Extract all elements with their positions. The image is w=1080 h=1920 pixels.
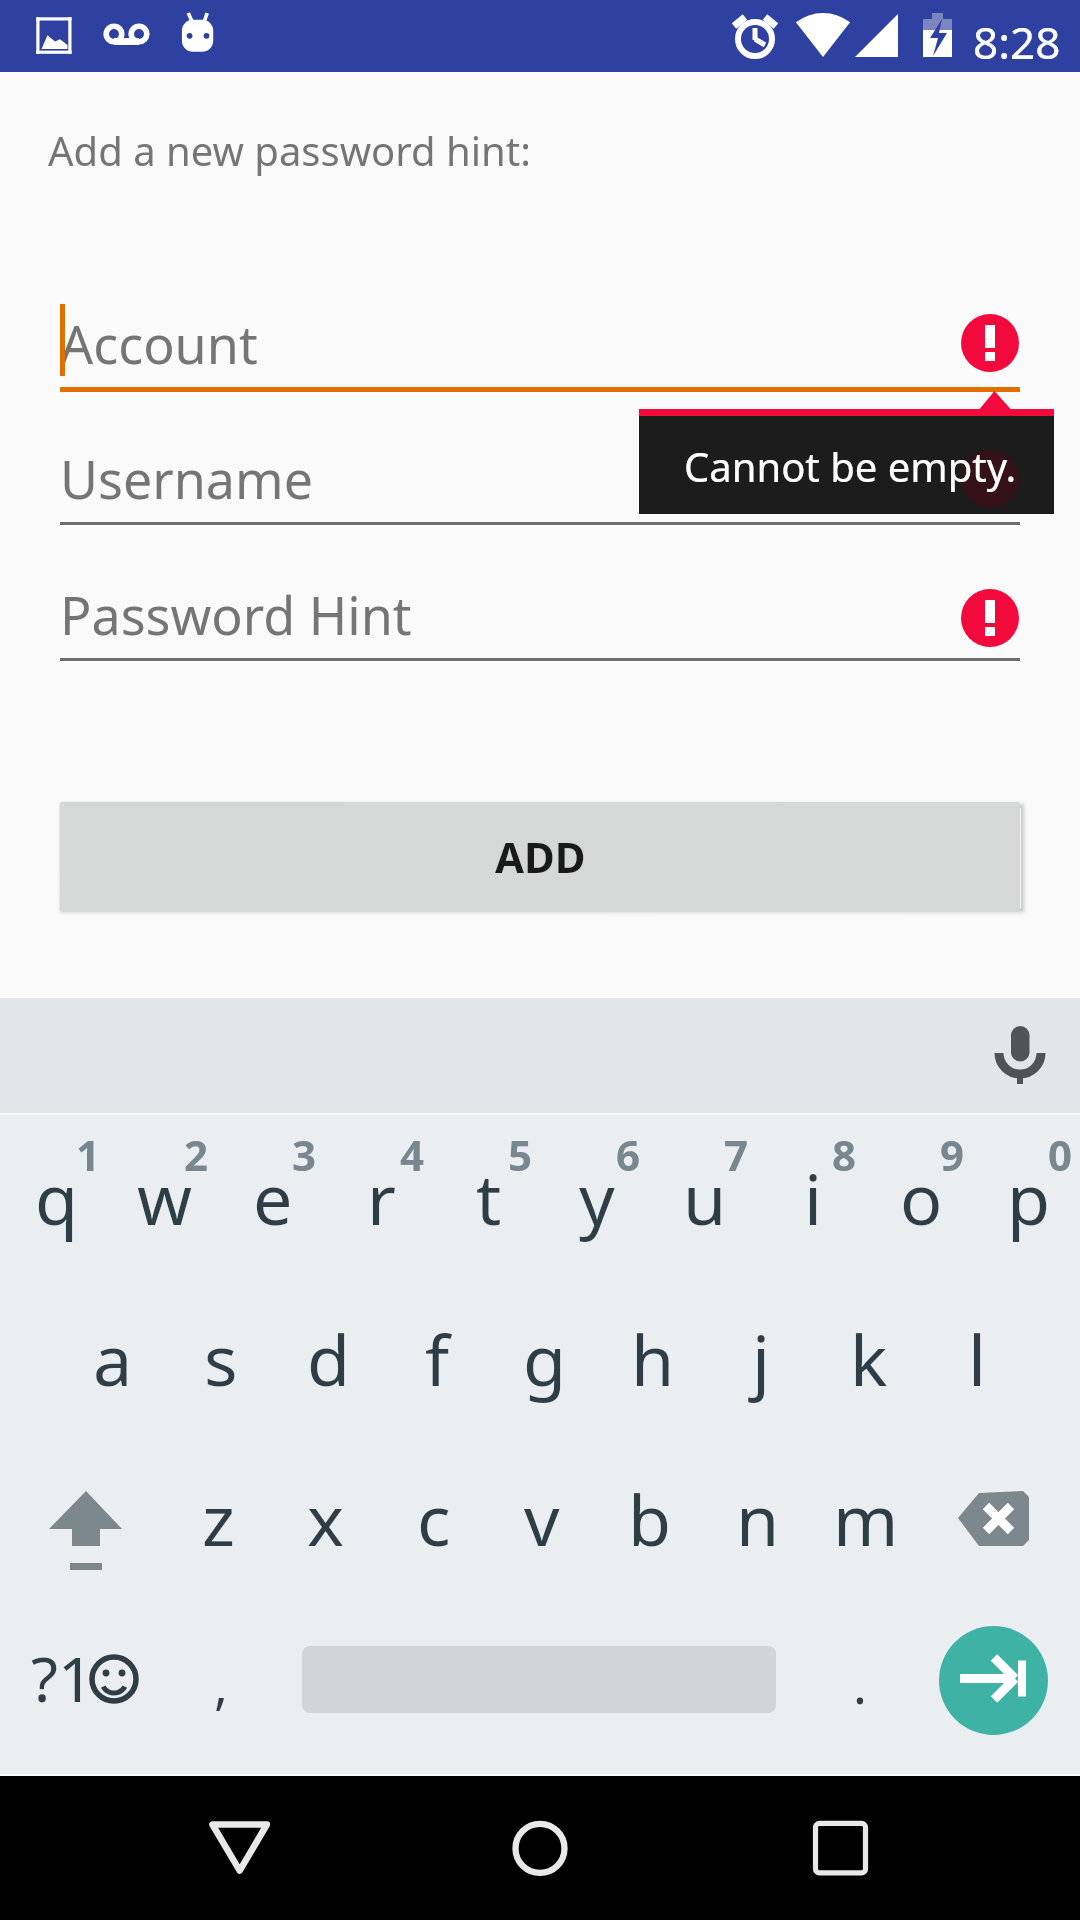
button[interactable]: 3	[216, 1115, 324, 1275]
button[interactable]: f	[383, 1275, 491, 1435]
staticText: .	[853, 1648, 867, 1719]
button[interactable]: Recents	[795, 1806, 885, 1896]
button[interactable]: Username	[60, 435, 1020, 525]
button[interactable]: b	[596, 1435, 704, 1595]
staticText: x	[307, 1471, 345, 1566]
button[interactable]: Error	[961, 589, 1019, 647]
staticText: 6	[616, 1126, 641, 1183]
staticText: b	[628, 1471, 672, 1566]
staticText: a	[93, 1311, 133, 1406]
staticText: w	[137, 1150, 193, 1245]
staticText: Account	[60, 308, 258, 379]
button[interactable]: ADD	[60, 802, 1020, 911]
button[interactable]: Shift	[0, 1435, 162, 1595]
button[interactable]: Cannot be empty.	[639, 409, 1054, 514]
staticText: 1	[76, 1126, 101, 1183]
staticText: g	[523, 1311, 567, 1406]
button[interactable]: Symbols and emoji	[0, 1595, 180, 1755]
button[interactable]: d	[275, 1275, 383, 1435]
staticText: i	[804, 1150, 823, 1245]
staticText: 0	[1048, 1126, 1073, 1183]
button[interactable]: Account	[60, 300, 1020, 392]
staticText: c	[417, 1471, 451, 1566]
staticText: v	[524, 1471, 560, 1566]
staticText: 5	[508, 1126, 533, 1183]
button[interactable]: 0	[972, 1115, 1080, 1275]
staticText: Password Hint	[60, 579, 412, 650]
staticText: t	[476, 1150, 502, 1245]
staticText: z	[202, 1471, 235, 1566]
button[interactable]: 2	[108, 1115, 216, 1275]
staticText: u	[683, 1150, 727, 1245]
staticText: m	[833, 1471, 899, 1566]
button[interactable]: k	[815, 1275, 923, 1435]
staticText: ADD	[495, 828, 586, 885]
button[interactable]: 5	[432, 1115, 540, 1275]
button[interactable]: Back	[195, 1806, 285, 1896]
button[interactable]: Error	[961, 314, 1019, 372]
staticText: 8	[832, 1126, 857, 1183]
button[interactable]: v	[488, 1435, 596, 1595]
staticText: 9	[940, 1126, 965, 1183]
staticText: q	[35, 1150, 79, 1245]
button[interactable]: 1	[0, 1115, 108, 1275]
staticText: f	[425, 1311, 450, 1406]
staticText: Username	[60, 443, 313, 514]
staticText: l	[968, 1311, 987, 1406]
staticText: 2	[184, 1126, 209, 1183]
staticText: h	[631, 1311, 675, 1406]
staticText: o	[900, 1150, 943, 1245]
button[interactable]: Next	[939, 1626, 1048, 1735]
staticText: d	[307, 1311, 351, 1406]
button[interactable]: g	[491, 1275, 599, 1435]
button[interactable]: Voice input	[975, 1008, 1071, 1104]
button[interactable]: 8	[756, 1115, 864, 1275]
button[interactable]: Home	[495, 1806, 585, 1896]
button[interactable]: n	[704, 1435, 812, 1595]
button[interactable]: c	[380, 1435, 488, 1595]
button[interactable]: 4	[324, 1115, 432, 1275]
staticText: y	[579, 1150, 615, 1245]
staticText: ,	[214, 1648, 228, 1719]
staticText: r	[367, 1150, 396, 1245]
button[interactable]: x	[272, 1435, 380, 1595]
staticText: Cannot be empty.	[684, 439, 1017, 493]
staticText: 7	[724, 1126, 749, 1183]
button[interactable]: ,	[180, 1595, 290, 1755]
staticText: j	[752, 1311, 771, 1406]
button[interactable]: z	[164, 1435, 272, 1595]
staticText: e	[253, 1150, 293, 1245]
button[interactable]: h	[599, 1275, 707, 1435]
staticText: p	[1007, 1150, 1051, 1245]
button[interactable]: 7	[648, 1115, 756, 1275]
staticText: s	[204, 1311, 238, 1406]
button[interactable]: Password Hint	[60, 571, 1020, 661]
staticText: 8:28	[973, 12, 1061, 72]
button[interactable]: s	[167, 1275, 275, 1435]
staticText: 3	[292, 1126, 317, 1183]
button[interactable]: Backspace	[918, 1435, 1080, 1595]
button[interactable]: a	[59, 1275, 167, 1435]
button[interactable]: 9	[864, 1115, 972, 1275]
staticText: n	[736, 1471, 780, 1566]
button[interactable]: 6	[540, 1115, 648, 1275]
staticText: ?1	[31, 1636, 94, 1720]
staticText: 4	[400, 1126, 425, 1183]
button[interactable]: m	[812, 1435, 920, 1595]
button[interactable]: .	[800, 1595, 910, 1755]
button[interactable]: j	[707, 1275, 815, 1435]
button[interactable]: l	[923, 1275, 1031, 1435]
staticText: k	[850, 1311, 888, 1406]
staticText: Add a new password hint:	[48, 123, 531, 177]
